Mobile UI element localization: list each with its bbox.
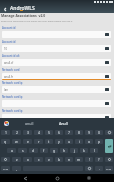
button[interactable]: 10 (2, 45, 111, 52)
button[interactable]: . (95, 166, 103, 171)
button[interactable]: Emoji (85, 166, 93, 171)
button[interactable]: s (18, 148, 27, 153)
button[interactable]: x (23, 157, 32, 162)
button[interactable]: r (34, 139, 43, 144)
staticText: a (11, 148, 13, 153)
button[interactable]: w (12, 139, 21, 144)
staticText: Enter your passcode or the inputs the yo… (1, 20, 73, 23)
staticText: h (63, 148, 66, 153)
button[interactable]: ?123 (105, 166, 113, 171)
button[interactable] (2, 114, 111, 121)
button[interactable]: h (60, 148, 68, 153)
button[interactable]: Shift (105, 157, 113, 162)
button[interactable]: b (55, 157, 63, 162)
button[interactable]: Voice input (0, 118, 13, 128)
button[interactable]: Back (18, 174, 32, 182)
button[interactable]: 1 (1, 130, 10, 135)
staticText: Network card ip (2, 81, 23, 85)
staticText: y (58, 139, 60, 144)
button[interactable]: i (75, 139, 83, 144)
staticText: v (48, 157, 50, 162)
button[interactable]: l (90, 148, 98, 153)
button[interactable]: Anull (46, 118, 80, 128)
button[interactable]: d (29, 148, 38, 153)
button[interactable]: 7 (65, 130, 73, 135)
staticText: f (43, 148, 45, 153)
staticText: t (48, 139, 50, 144)
staticText: d (32, 148, 35, 153)
button[interactable]: Recent apps (82, 174, 96, 182)
button[interactable]: Home (50, 174, 64, 182)
button[interactable]: Shift (1, 157, 10, 162)
button[interactable]: k (80, 148, 88, 153)
button[interactable]: anull (13, 118, 46, 128)
button[interactable]: q (1, 139, 10, 144)
staticText: o (88, 139, 91, 144)
staticText: e (27, 139, 29, 144)
button[interactable]: 6 (55, 130, 63, 135)
staticText: . (99, 166, 100, 171)
button[interactable]: 9 (85, 130, 93, 135)
button[interactable]: anull.cf (2, 59, 111, 66)
button[interactable]: g (50, 148, 58, 153)
button[interactable]: m (75, 157, 83, 162)
button[interactable]: p (95, 139, 103, 144)
button[interactable]: Navigate up (0, 5, 9, 13)
button[interactable]: lan (2, 86, 111, 93)
button[interactable]: c (34, 157, 43, 162)
button[interactable]: Backspace (105, 130, 113, 135)
button[interactable]: v (45, 157, 53, 162)
staticText: Network card ip (2, 109, 23, 113)
staticText: 2 (16, 130, 18, 135)
button[interactable]: ! (85, 157, 93, 162)
staticText: lan (4, 88, 8, 92)
button[interactable]: n (65, 157, 73, 162)
staticText: 5 (48, 130, 50, 135)
button[interactable]: z (12, 157, 21, 162)
button[interactable]: 2 (12, 130, 21, 135)
button[interactable]: 4 (34, 130, 43, 135)
staticText: Manage Associations v2.0 (1, 13, 46, 18)
button[interactable] (2, 100, 111, 107)
button[interactable]: , (12, 166, 21, 171)
staticText: Network card (2, 68, 20, 72)
button[interactable] (2, 31, 111, 38)
staticText: 9 (88, 130, 90, 135)
button[interactable]: anull.fr (2, 73, 111, 80)
staticText: q (4, 139, 7, 144)
staticText: ! (89, 157, 90, 162)
staticText: j (74, 148, 75, 153)
button[interactable]: e (23, 139, 32, 144)
button[interactable]: 0 (95, 130, 103, 135)
button[interactable]: ? (95, 157, 103, 162)
staticText: k (83, 148, 85, 153)
button[interactable]: 8 (75, 130, 83, 135)
staticText: , (16, 166, 17, 171)
staticText: Account id (2, 40, 16, 44)
staticText: p (98, 139, 101, 144)
staticText: x (27, 157, 29, 162)
staticText: b (58, 157, 61, 162)
button[interactable]: y (55, 139, 63, 144)
button[interactable]: f (40, 148, 48, 153)
button[interactable]: o (85, 139, 93, 144)
button[interactable]: Enter (105, 139, 113, 153)
button[interactable]: 3 (23, 130, 32, 135)
button[interactable]: j (70, 148, 78, 153)
staticText: anull (25, 121, 34, 126)
staticText: 4 (38, 130, 40, 135)
staticText: c (38, 157, 40, 162)
button[interactable]: a (7, 148, 16, 153)
button[interactable]: u (65, 139, 73, 144)
button[interactable]: ?123 (1, 166, 10, 171)
staticText: 0 (98, 130, 100, 135)
staticText: w (15, 139, 18, 144)
button[interactable]: 5 (45, 130, 53, 135)
staticText: n (68, 157, 71, 162)
button[interactable]: t (45, 139, 53, 144)
staticText: u (68, 139, 71, 144)
staticText: ? (98, 157, 100, 162)
staticText: 6 (58, 130, 60, 135)
